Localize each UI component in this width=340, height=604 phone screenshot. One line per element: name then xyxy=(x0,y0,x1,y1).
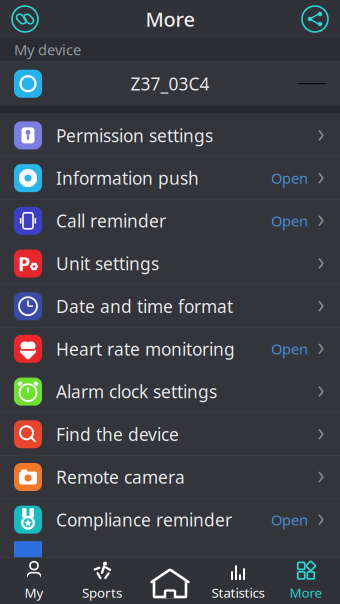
staticText: Information push xyxy=(56,167,199,190)
button[interactable]: Share xyxy=(300,4,330,34)
button[interactable]: Home xyxy=(136,558,204,604)
staticText: Sports xyxy=(82,584,122,601)
staticText: My device xyxy=(14,40,81,59)
staticText: Find the device xyxy=(56,423,179,446)
button[interactable]: Permission settings xyxy=(0,114,340,157)
staticText: Date and time format xyxy=(56,295,233,318)
button[interactable]: Heart rate monitoring xyxy=(0,328,340,371)
staticText: Unit settings xyxy=(56,252,159,275)
staticText: Open xyxy=(271,510,308,529)
button[interactable]: P xyxy=(0,242,340,285)
button[interactable]: ★ xyxy=(0,499,340,541)
staticText: More xyxy=(289,584,322,601)
staticText: ★ xyxy=(23,517,33,529)
button[interactable]: Alarm clock settings xyxy=(0,371,340,413)
staticText: My xyxy=(24,584,43,601)
staticText: Open xyxy=(271,339,308,359)
button[interactable]: Call reminder xyxy=(0,200,340,242)
button[interactable]: Remote camera xyxy=(0,456,340,499)
staticText: Remote camera xyxy=(56,465,185,488)
staticText: Open xyxy=(271,168,308,188)
staticText: Alarm clock settings xyxy=(56,380,217,403)
button[interactable]: Information push xyxy=(0,157,340,200)
button[interactable]: Date and time format xyxy=(0,285,340,328)
staticText: Heart rate monitoring xyxy=(56,337,235,360)
button[interactable]: Connect device xyxy=(10,4,40,34)
button[interactable]: Find the device xyxy=(0,413,340,456)
staticText: Compliance reminder xyxy=(56,508,232,531)
staticText: Z37_03C4 xyxy=(130,72,209,95)
staticText: P xyxy=(18,250,30,277)
button[interactable]: Z37_03C4 xyxy=(0,62,340,106)
staticText: Statistics xyxy=(211,584,264,601)
button[interactable]: Sports xyxy=(68,558,136,604)
staticText: Open xyxy=(271,211,308,231)
button[interactable]: Statistics xyxy=(204,558,272,604)
button[interactable]: My xyxy=(0,558,68,604)
staticText: Call reminder xyxy=(56,209,166,232)
staticText: More xyxy=(145,6,194,32)
staticText: Permission settings xyxy=(56,124,213,147)
button[interactable]: More xyxy=(272,558,340,604)
